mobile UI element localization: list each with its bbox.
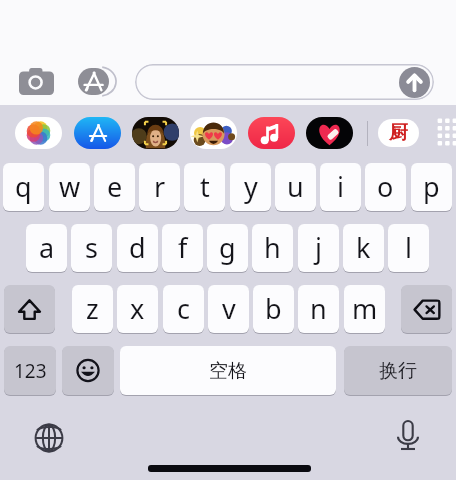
staticText: 空格 xyxy=(209,359,247,383)
staticText: j xyxy=(315,229,322,266)
staticText: z xyxy=(86,290,99,327)
button[interactable]: h xyxy=(252,224,293,272)
staticText: n xyxy=(310,290,327,327)
staticText: r xyxy=(154,168,166,205)
button[interactable]: App Store xyxy=(78,68,109,95)
button[interactable]: r xyxy=(139,163,180,211)
button[interactable]: Music xyxy=(248,117,295,149)
staticText: x xyxy=(130,290,145,327)
button[interactable]: c xyxy=(163,285,204,333)
button[interactable]: a xyxy=(26,224,67,272)
button[interactable]: d xyxy=(117,224,158,272)
staticText: 123 xyxy=(14,358,47,384)
staticText: y xyxy=(244,168,258,205)
button[interactable]: Shift xyxy=(4,285,55,333)
button[interactable]: j xyxy=(298,224,339,272)
staticText: i xyxy=(337,168,344,205)
button[interactable]: f xyxy=(162,224,203,272)
button[interactable]: y xyxy=(230,163,271,211)
staticText: l xyxy=(405,229,412,266)
button[interactable]: Send xyxy=(399,67,430,98)
staticText: b xyxy=(265,290,282,327)
button[interactable]: Photos xyxy=(15,117,62,149)
button[interactable]: b xyxy=(253,285,294,333)
button[interactable]: u xyxy=(275,163,316,211)
staticText: e xyxy=(107,168,123,205)
button[interactable]: Dictation xyxy=(398,421,418,450)
button[interactable]: More apps xyxy=(437,118,456,148)
staticText: v xyxy=(222,290,236,327)
button[interactable]: Memoji xyxy=(132,117,179,149)
staticText: c xyxy=(177,290,190,327)
button[interactable]: Kitchen app xyxy=(378,119,419,147)
button[interactable]: Emoji xyxy=(62,346,114,395)
staticText: h xyxy=(264,229,281,266)
staticText: s xyxy=(85,229,98,266)
button[interactable]: i xyxy=(320,163,361,211)
staticText: 厨 xyxy=(389,121,408,145)
staticText: q xyxy=(15,168,32,205)
staticText: 换行 xyxy=(379,359,417,383)
staticText: u xyxy=(287,168,304,205)
button[interactable]: 换行 xyxy=(344,346,452,395)
button[interactable]: l xyxy=(388,224,429,272)
button[interactable]: g xyxy=(207,224,248,272)
button[interactable]: m xyxy=(344,285,385,333)
staticText: k xyxy=(356,229,371,266)
staticText: w xyxy=(59,168,81,205)
button[interactable]: v xyxy=(208,285,249,333)
button[interactable]: Message field xyxy=(135,64,434,100)
staticText: f xyxy=(178,229,188,266)
button[interactable]: e xyxy=(94,163,135,211)
button[interactable]: s xyxy=(71,224,112,272)
button[interactable]: p xyxy=(411,163,452,211)
staticText: a xyxy=(39,229,55,266)
button[interactable]: o xyxy=(365,163,406,211)
button[interactable]: Stickers xyxy=(190,117,237,149)
button[interactable]: Camera xyxy=(19,68,54,95)
staticText: g xyxy=(219,229,236,266)
button[interactable]: Health xyxy=(306,117,353,149)
button[interactable]: x xyxy=(117,285,158,333)
button[interactable]: 空格 xyxy=(120,346,336,395)
button[interactable]: w xyxy=(49,163,90,211)
button[interactable]: Change keyboard xyxy=(34,423,64,453)
staticText: o xyxy=(377,168,394,205)
button[interactable]: App Store xyxy=(74,117,121,149)
button[interactable]: n xyxy=(298,285,339,333)
button[interactable]: k xyxy=(343,224,384,272)
button[interactable]: t xyxy=(184,163,225,211)
button[interactable]: 123 xyxy=(4,346,56,395)
button[interactable]: q xyxy=(3,163,44,211)
staticText: m xyxy=(352,290,378,327)
button[interactable]: z xyxy=(72,285,113,333)
staticText: p xyxy=(423,168,440,205)
staticText: t xyxy=(200,168,210,205)
staticText: d xyxy=(129,229,146,266)
button[interactable]: Backspace xyxy=(401,285,452,333)
